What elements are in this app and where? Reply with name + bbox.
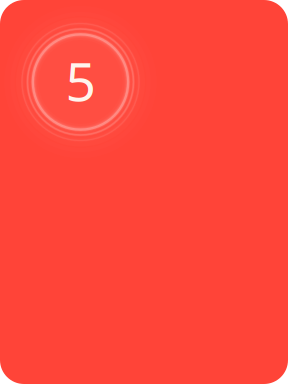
button[interactable]: 5 notifications [5, 7, 155, 157]
staticText: 5 [65, 45, 96, 116]
